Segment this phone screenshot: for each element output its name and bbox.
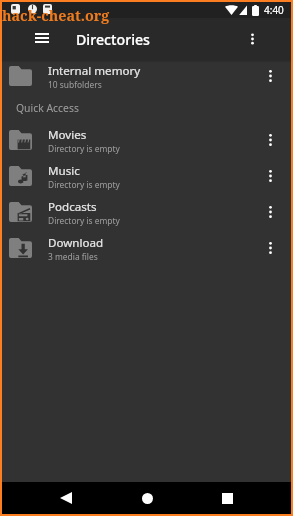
button[interactable]: More options for Download xyxy=(249,230,291,266)
button[interactable]: More options for Music xyxy=(249,158,291,194)
button[interactable]: More options xyxy=(240,27,264,51)
staticText: 10 subfolders xyxy=(48,79,102,90)
button[interactable]: Podcasts xyxy=(2,194,291,230)
staticText: Quick Access xyxy=(16,101,79,115)
staticText: Directory is empty xyxy=(48,179,120,190)
button[interactable]: Home xyxy=(131,482,163,514)
staticText: Podcasts xyxy=(48,199,97,215)
button[interactable]: More options for Movies xyxy=(249,122,291,158)
staticText: 3 media files xyxy=(48,251,98,262)
button[interactable]: More options for Internal memory xyxy=(249,58,291,94)
staticText: 4:40 xyxy=(264,3,284,17)
button[interactable]: Movies xyxy=(2,122,291,158)
button[interactable]: Download xyxy=(2,230,291,266)
staticText: Directory is empty xyxy=(48,143,120,154)
staticText: hack-cheat.org xyxy=(2,6,110,25)
button[interactable]: Music xyxy=(2,158,291,194)
staticText: Internal memory xyxy=(48,63,141,79)
staticText: Download xyxy=(48,235,104,251)
staticText: Music xyxy=(48,163,80,179)
button[interactable]: Internal memory xyxy=(2,58,291,94)
staticText: Directory is empty xyxy=(48,215,120,226)
button[interactable]: More options for Podcasts xyxy=(249,194,291,230)
staticText: Movies xyxy=(48,127,87,143)
button[interactable]: Recent apps xyxy=(211,482,243,514)
staticText: Directories xyxy=(76,30,151,49)
button[interactable]: Open navigation drawer xyxy=(30,27,54,51)
button[interactable]: Back xyxy=(50,482,82,514)
